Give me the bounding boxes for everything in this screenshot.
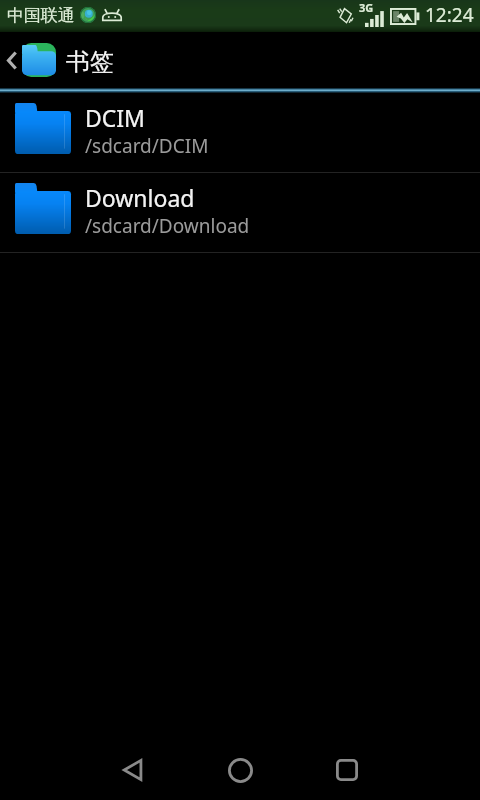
button[interactable]: Back	[0, 32, 480, 88]
button[interactable]: DCIM	[0, 93, 480, 172]
staticText: /sdcard/Download	[85, 213, 250, 239]
button[interactable]: Back	[0, 32, 22, 88]
staticText: 书签	[66, 47, 114, 77]
staticText: 中国联通	[7, 5, 75, 26]
staticText: Download	[85, 182, 195, 213]
staticText: /sdcard/DCIM	[85, 133, 209, 159]
staticText: 3G	[359, 0, 374, 15]
button[interactable]: Back	[96, 740, 170, 800]
button[interactable]: Recent apps	[310, 740, 384, 800]
staticText: DCIM	[85, 102, 145, 133]
button[interactable]: Home	[203, 740, 277, 800]
button[interactable]: Download	[0, 173, 480, 252]
staticText: 12:24	[425, 2, 474, 28]
